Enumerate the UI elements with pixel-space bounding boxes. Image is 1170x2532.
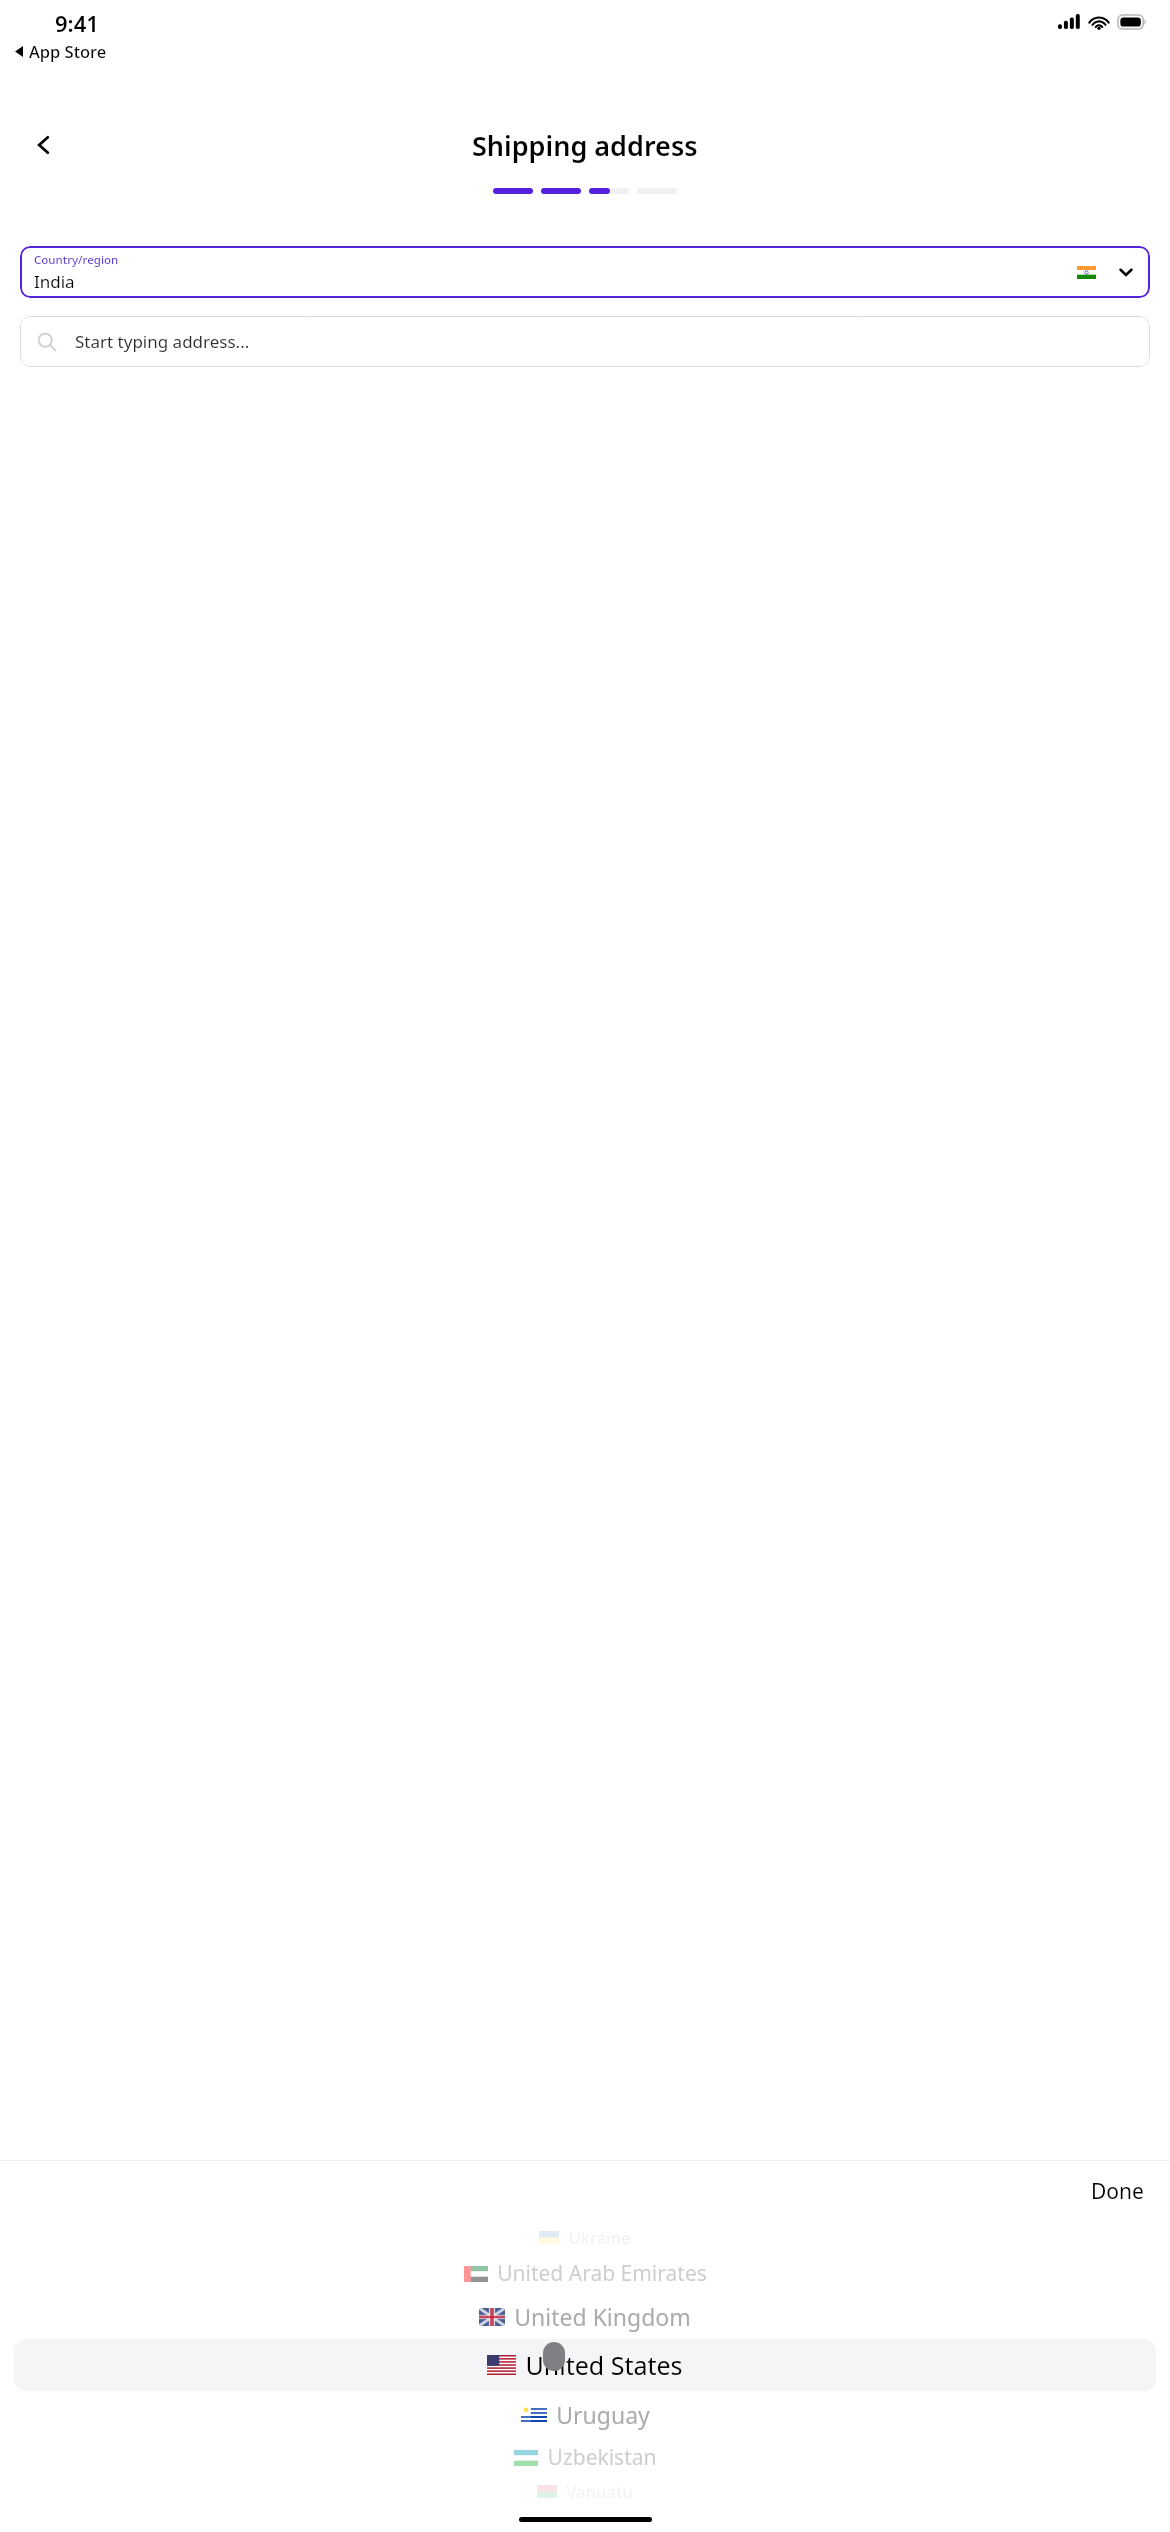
staticText: 9:41: [55, 8, 99, 38]
staticText: Done: [1091, 2177, 1144, 2206]
staticText: App Store: [29, 40, 107, 62]
staticText: India: [34, 270, 75, 293]
staticText: United Arab Emirates: [497, 2259, 707, 2288]
staticText: Shipping address: [472, 127, 698, 164]
staticText: Vanuatu: [566, 2480, 633, 2503]
button[interactable]: United States: [14, 2339, 1156, 2391]
staticText: Ukraine: [568, 2226, 631, 2249]
button[interactable]: United Kingdom: [14, 2293, 1156, 2339]
button[interactable]: Start typing address...: [20, 316, 1150, 367]
staticText: Country/region: [34, 252, 119, 268]
button[interactable]: Back: [20, 121, 68, 169]
button[interactable]: United Arab Emirates: [14, 2253, 1156, 2293]
staticText: Start typing address...: [75, 330, 250, 353]
button[interactable]: App Store: [14, 40, 107, 62]
button[interactable]: Country/region: [20, 246, 1150, 298]
button[interactable]: Uzbekistan: [14, 2437, 1156, 2477]
button[interactable]: Uruguay: [14, 2391, 1156, 2437]
staticText: United States: [525, 2348, 683, 2382]
staticText: United Kingdom: [514, 2301, 691, 2332]
button[interactable]: Done: [1079, 2169, 1156, 2214]
staticText: Uruguay: [556, 2399, 650, 2430]
staticText: Uzbekistan: [547, 2443, 657, 2472]
